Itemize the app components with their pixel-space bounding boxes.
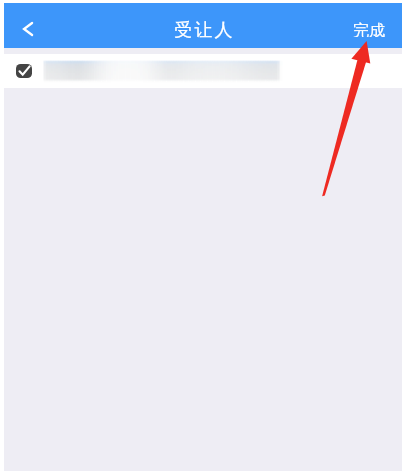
button[interactable]: Back	[4, 3, 46, 48]
button[interactable]: Selected	[4, 54, 402, 88]
button[interactable]: 完成	[335, 3, 402, 48]
staticText: 完成	[353, 21, 385, 37]
other: Selected	[16, 64, 32, 78]
staticText: 受让人	[174, 19, 235, 42]
